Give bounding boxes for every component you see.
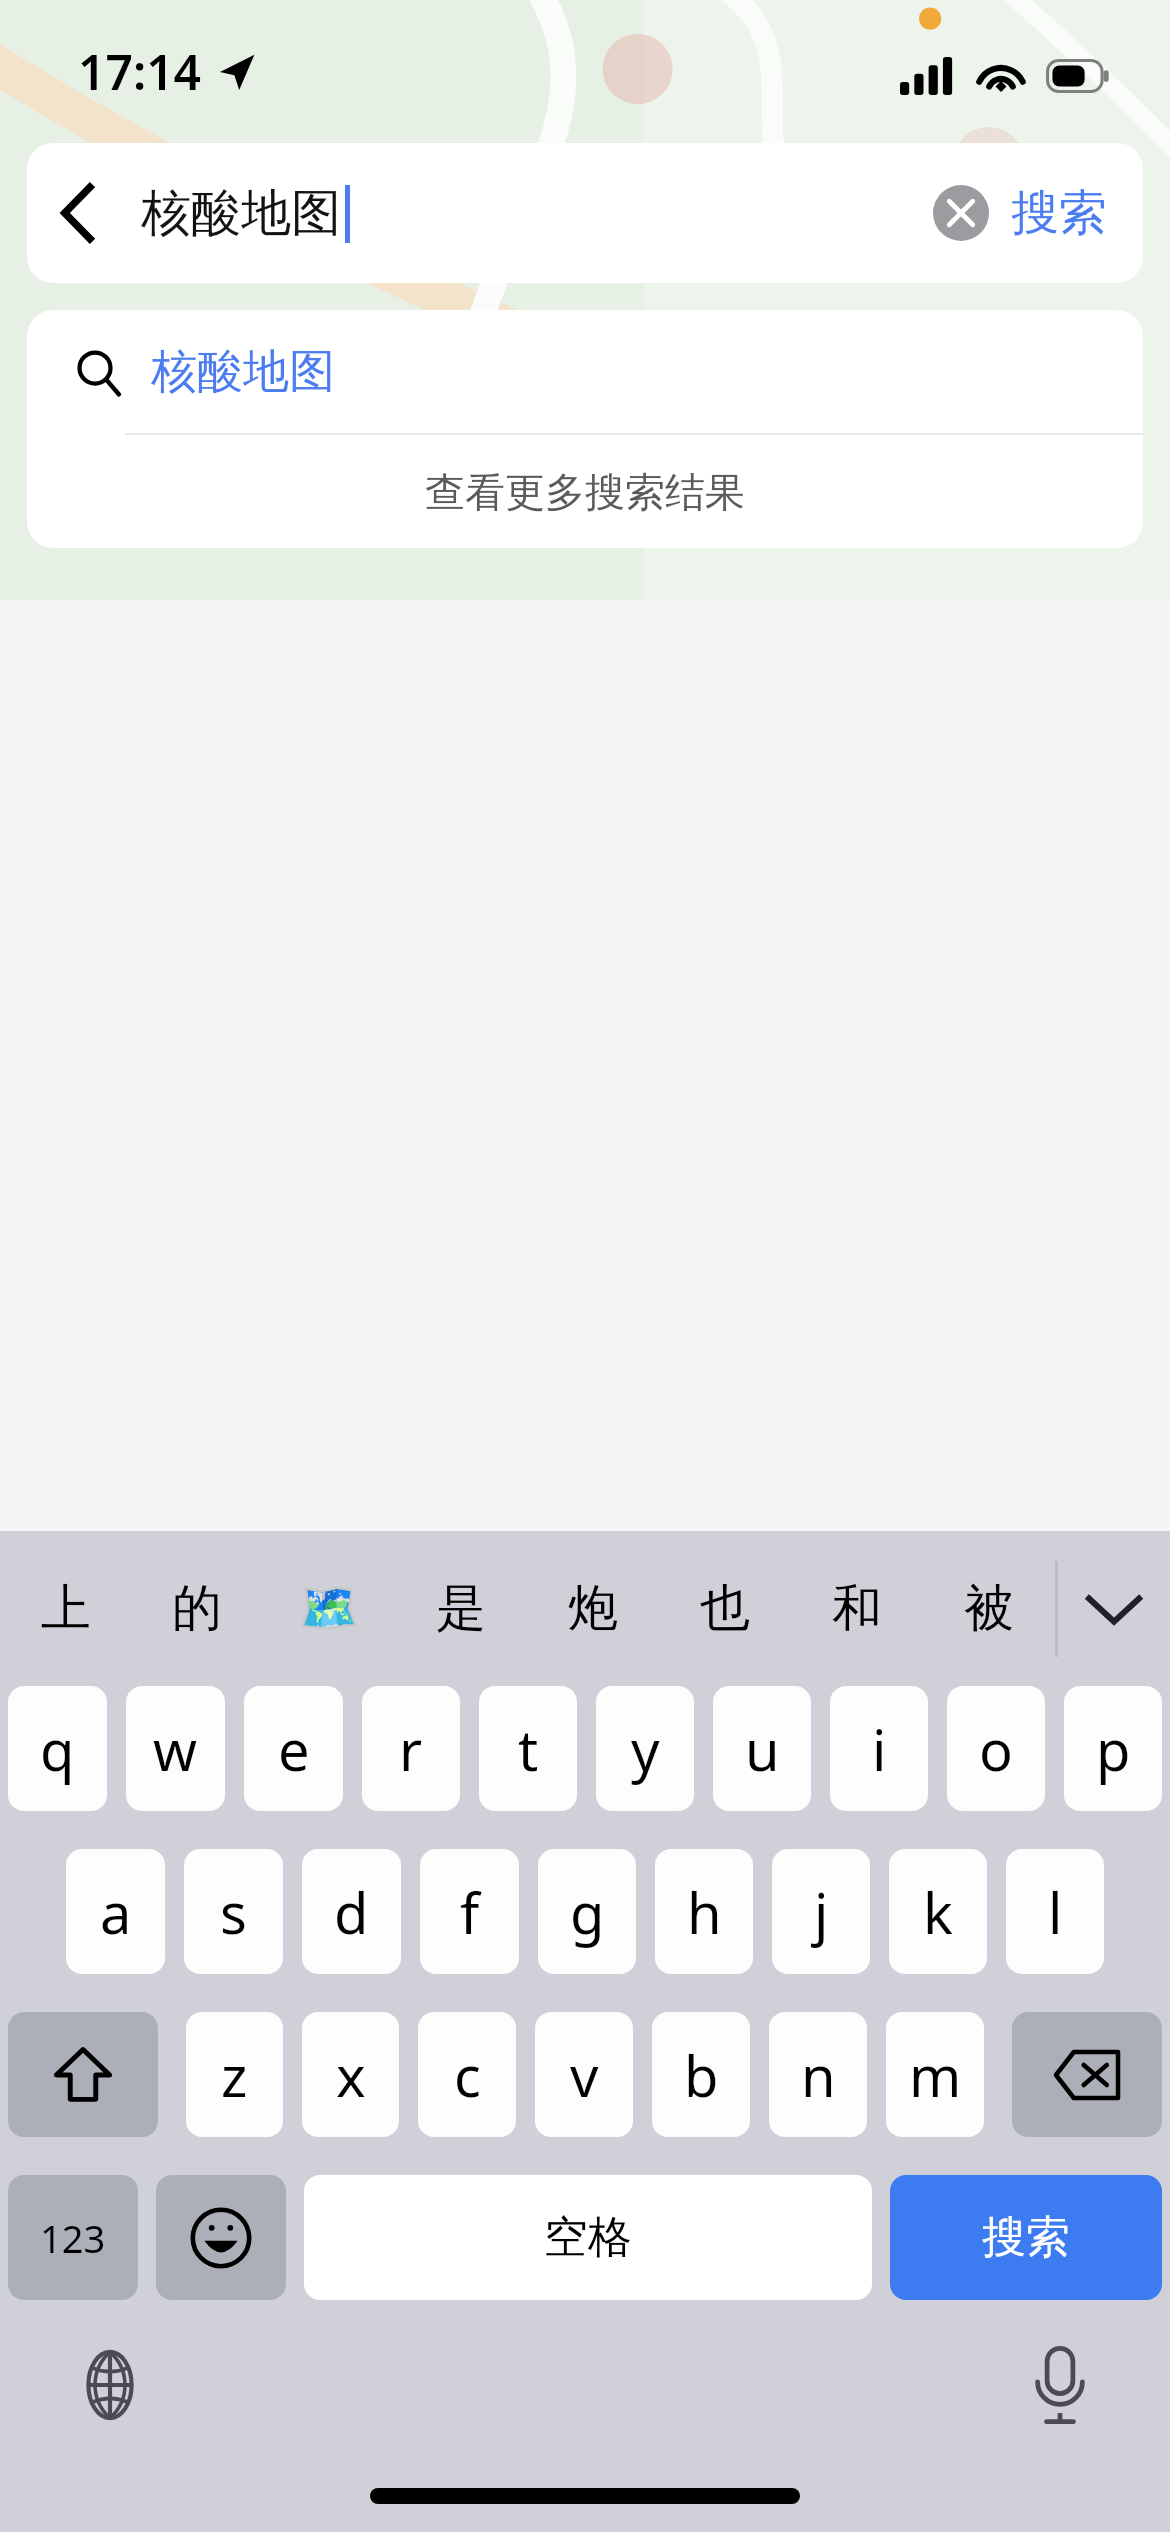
staticText: 17:14 bbox=[78, 39, 202, 104]
staticText: 被 bbox=[964, 1577, 1014, 1640]
button[interactable]: x bbox=[302, 2012, 399, 2137]
button[interactable]: v bbox=[535, 2012, 633, 2137]
button[interactable]: 和 bbox=[791, 1531, 923, 1686]
button[interactable]: 搜索 bbox=[890, 2175, 1162, 2300]
button[interactable]: w bbox=[126, 1686, 225, 1811]
button[interactable]: g bbox=[538, 1849, 636, 1974]
button[interactable]: 🗺 bbox=[263, 1531, 395, 1686]
button[interactable]: Change keyboard language bbox=[0, 2300, 220, 2470]
button[interactable]: 空格 bbox=[304, 2175, 872, 2300]
staticText: a bbox=[100, 1874, 132, 1950]
staticText: y bbox=[631, 1711, 660, 1787]
staticText: 的 bbox=[172, 1577, 222, 1640]
button[interactable]: h bbox=[655, 1849, 753, 1974]
staticText: 核酸地图 bbox=[141, 182, 341, 245]
staticText: g bbox=[570, 1874, 605, 1950]
staticText: i bbox=[872, 1711, 887, 1787]
button[interactable]: n bbox=[769, 2012, 867, 2137]
staticText: 炮 bbox=[568, 1577, 618, 1640]
staticText: p bbox=[1096, 1711, 1131, 1787]
staticText: c bbox=[454, 2037, 481, 2113]
button[interactable]: q bbox=[8, 1686, 107, 1811]
button[interactable]: Backspace bbox=[1012, 2012, 1162, 2137]
button[interactable]: f bbox=[420, 1849, 519, 1974]
staticText: u bbox=[745, 1711, 780, 1787]
button[interactable]: a bbox=[66, 1849, 165, 1974]
staticText: 是 bbox=[436, 1577, 486, 1640]
staticText: d bbox=[334, 1874, 369, 1950]
button[interactable]: 是 bbox=[395, 1531, 527, 1686]
button[interactable]: b bbox=[652, 2012, 750, 2137]
staticText: b bbox=[684, 2037, 719, 2113]
staticText: w bbox=[153, 1711, 198, 1787]
button[interactable]: Emoji bbox=[156, 2175, 286, 2300]
button[interactable]: 被 bbox=[923, 1531, 1055, 1686]
button[interactable]: e bbox=[244, 1686, 343, 1811]
button[interactable]: c bbox=[418, 2012, 516, 2137]
staticText: n bbox=[801, 2037, 836, 2113]
staticText: 搜索 bbox=[982, 2210, 1070, 2265]
button[interactable]: m bbox=[886, 2012, 984, 2137]
button[interactable]: Voice input bbox=[950, 2300, 1170, 2470]
staticText: x bbox=[336, 2037, 366, 2113]
button[interactable]: z bbox=[186, 2012, 283, 2137]
staticText: q bbox=[40, 1711, 75, 1787]
button[interactable]: k bbox=[889, 1849, 987, 1974]
button[interactable]: 也 bbox=[659, 1531, 791, 1686]
button[interactable]: 核酸地图 bbox=[27, 310, 1143, 433]
button[interactable]: d bbox=[302, 1849, 401, 1974]
staticText: k bbox=[923, 1874, 953, 1950]
staticText: 123 bbox=[40, 2212, 106, 2264]
button[interactable]: Back bbox=[27, 143, 127, 283]
staticText: e bbox=[278, 1711, 310, 1787]
staticText: h bbox=[687, 1874, 722, 1950]
button[interactable]: s bbox=[184, 1849, 283, 1974]
button[interactable]: 上 bbox=[0, 1531, 131, 1686]
staticText: z bbox=[221, 2037, 248, 2113]
button[interactable]: 炮 bbox=[527, 1531, 659, 1686]
button[interactable]: 搜索 bbox=[1011, 143, 1107, 283]
staticText: o bbox=[979, 1711, 1013, 1787]
staticText: s bbox=[220, 1874, 247, 1950]
staticText: 上 bbox=[41, 1577, 91, 1640]
button[interactable]: p bbox=[1064, 1686, 1162, 1811]
staticText: 空格 bbox=[544, 2210, 632, 2265]
button[interactable]: r bbox=[362, 1686, 460, 1811]
button[interactable]: l bbox=[1006, 1849, 1104, 1974]
staticText: l bbox=[1048, 1874, 1063, 1950]
staticText: t bbox=[518, 1711, 539, 1787]
button[interactable]: o bbox=[947, 1686, 1045, 1811]
button[interactable]: Clear text bbox=[915, 143, 1007, 283]
button[interactable]: Collapse keyboard bbox=[1058, 1531, 1170, 1686]
staticText: j bbox=[814, 1874, 829, 1950]
button[interactable]: Shift bbox=[8, 2012, 158, 2137]
button[interactable]: 的 bbox=[131, 1531, 263, 1686]
staticText: 和 bbox=[832, 1577, 882, 1640]
staticText: 搜索 bbox=[1011, 183, 1107, 243]
button[interactable]: u bbox=[713, 1686, 811, 1811]
staticText: 查看更多搜索结果 bbox=[425, 467, 745, 517]
staticText: m bbox=[909, 2037, 962, 2113]
staticText: 也 bbox=[700, 1577, 750, 1640]
button[interactable]: t bbox=[479, 1686, 577, 1811]
staticText: 🗺 bbox=[298, 1579, 361, 1638]
button[interactable]: 查看更多搜索结果 bbox=[27, 435, 1143, 548]
button[interactable]: i bbox=[830, 1686, 928, 1811]
button[interactable]: y bbox=[596, 1686, 694, 1811]
staticText: 核酸地图 bbox=[151, 343, 335, 401]
staticText: r bbox=[399, 1711, 423, 1787]
staticText: f bbox=[460, 1874, 480, 1950]
button[interactable]: 123 bbox=[8, 2175, 138, 2300]
staticText: v bbox=[570, 2037, 599, 2113]
button[interactable]: j bbox=[772, 1849, 870, 1974]
